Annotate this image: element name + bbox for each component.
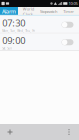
staticText: World Clock <box>23 6 34 17</box>
button[interactable]: 09:00 <box>0 33 79 51</box>
button[interactable]: Alarm <box>0 7 18 16</box>
button[interactable]: Add alarm <box>0 124 20 140</box>
staticText: 07:30 <box>2 17 25 29</box>
staticText: Stopwatch <box>40 9 57 14</box>
button[interactable]: More options <box>59 124 79 140</box>
button[interactable]: Timer <box>59 7 79 16</box>
staticText: 10:05 <box>68 1 77 6</box>
staticText: Timer <box>63 9 74 14</box>
button[interactable]: World Clock <box>18 7 38 16</box>
staticText: Alarm <box>2 8 16 15</box>
button[interactable]: 07:30 <box>0 16 79 33</box>
staticText: Sat, Sun <box>2 47 12 50</box>
staticText: Mon, Tue, Wed, Thu, Fri <box>2 29 35 33</box>
staticText: 09:00 <box>2 34 25 47</box>
button[interactable]: Stopwatch <box>38 7 59 16</box>
